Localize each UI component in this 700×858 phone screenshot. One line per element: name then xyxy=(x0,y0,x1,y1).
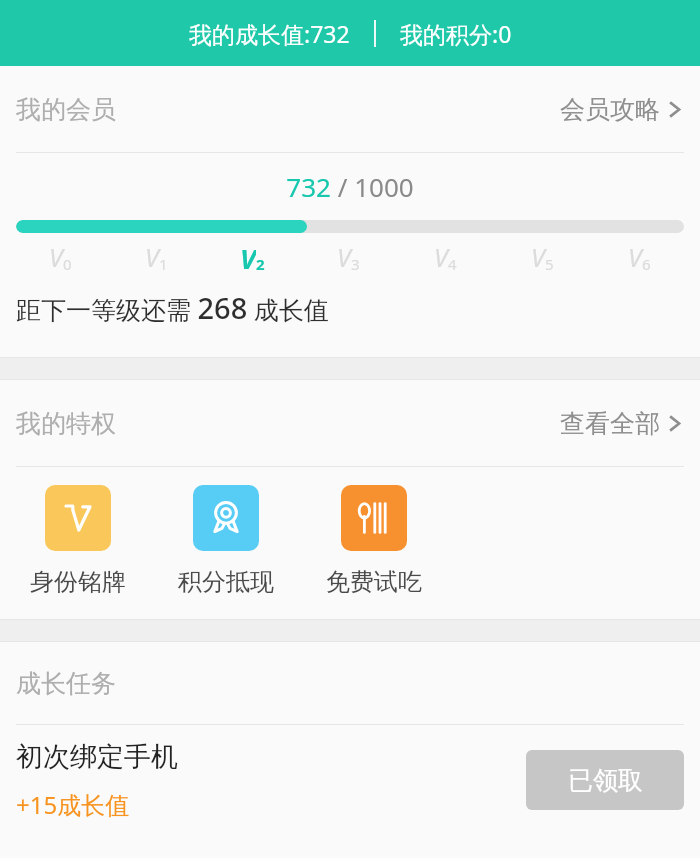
staticText: V xyxy=(145,240,159,274)
staticText: V xyxy=(628,240,642,274)
staticText: 3 xyxy=(351,254,360,274)
staticText: +15成长值 xyxy=(16,788,130,821)
staticText: V xyxy=(434,240,448,274)
staticText: 1 xyxy=(159,254,168,274)
staticText: 0 xyxy=(63,254,72,274)
staticText: 免费试吃 xyxy=(326,567,422,597)
staticText: 积分抵现 xyxy=(178,567,274,597)
staticText: 我的成长值:732 xyxy=(189,18,350,49)
staticText: 5 xyxy=(545,254,554,274)
staticText: 身份铭牌 xyxy=(30,567,126,597)
staticText: 距下一等级还需 268 成长值 xyxy=(16,288,329,327)
staticText: 我的会员 xyxy=(16,94,116,125)
button[interactable]: 免费试吃 xyxy=(326,485,422,597)
staticText: V xyxy=(337,240,351,274)
staticText: 4 xyxy=(448,254,457,274)
button[interactable]: 积分抵现 xyxy=(178,485,274,597)
staticText: 我的积分:0 xyxy=(400,18,512,49)
button[interactable]: 初次绑定手机 xyxy=(0,725,700,835)
button[interactable]: 身份铭牌 xyxy=(30,485,126,597)
staticText: 查看全部 xyxy=(560,408,660,439)
staticText: 初次绑定手机 xyxy=(16,740,178,774)
staticText: 732 / 1000 xyxy=(286,169,414,204)
staticText: 已领取 xyxy=(568,765,643,796)
staticText: 6 xyxy=(642,254,651,274)
staticText: 成长任务 xyxy=(16,668,116,699)
staticText: 2 xyxy=(256,254,265,274)
button[interactable]: 查看全部 xyxy=(556,400,684,447)
button[interactable]: 已领取 xyxy=(526,750,684,810)
staticText: V xyxy=(240,240,256,274)
staticText: V xyxy=(531,240,545,274)
button[interactable]: 会员攻略 xyxy=(556,86,684,133)
staticText: 会员攻略 xyxy=(560,94,660,125)
staticText: 我的特权 xyxy=(16,408,116,439)
staticText: V xyxy=(49,240,63,274)
